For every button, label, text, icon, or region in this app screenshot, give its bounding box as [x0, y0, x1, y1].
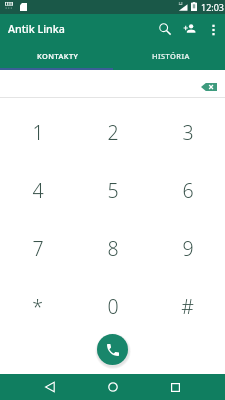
- button[interactable]: Add contact: [177, 16, 202, 41]
- staticText: 3: [182, 119, 194, 146]
- button[interactable]: 1: [0, 103, 75, 161]
- staticText: KONTAKTY: [37, 51, 79, 61]
- staticText: 12:03: [201, 1, 225, 13]
- button[interactable]: 9: [150, 219, 225, 277]
- button[interactable]: Call: [97, 334, 128, 365]
- button[interactable]: More options: [202, 18, 224, 40]
- button[interactable]: Backspace: [197, 77, 221, 97]
- button[interactable]: 5: [75, 161, 150, 219]
- staticText: 9: [182, 235, 194, 262]
- staticText: 2: [107, 119, 119, 146]
- button[interactable]: Home: [100, 374, 126, 400]
- staticText: #: [181, 293, 194, 320]
- staticText: 0: [107, 293, 119, 320]
- button[interactable]: HISTÓRIA: [112, 42, 225, 70]
- button[interactable]: 2: [75, 103, 150, 161]
- staticText: 8: [107, 235, 119, 262]
- button[interactable]: Back: [37, 374, 63, 400]
- button[interactable]: 7: [0, 219, 75, 277]
- button[interactable]: 8: [75, 219, 150, 277]
- button[interactable]: 6: [150, 161, 225, 219]
- staticText: 7: [32, 235, 44, 262]
- button[interactable]: #: [150, 277, 225, 335]
- button[interactable]: Recents: [162, 374, 188, 400]
- button[interactable]: 3: [150, 103, 225, 161]
- button[interactable]: KONTAKTY: [0, 42, 112, 70]
- button[interactable]: Search: [152, 16, 177, 41]
- staticText: *: [32, 293, 43, 320]
- staticText: HISTÓRIA: [152, 51, 190, 61]
- staticText: 4: [32, 177, 44, 204]
- staticText: 5: [107, 177, 119, 204]
- staticText: 1: [32, 119, 44, 146]
- staticText: 6: [182, 177, 194, 204]
- button[interactable]: 4: [0, 161, 75, 219]
- staticText: Antik Linka: [8, 22, 65, 37]
- button[interactable]: *: [0, 277, 75, 335]
- button[interactable]: 0: [75, 277, 150, 335]
